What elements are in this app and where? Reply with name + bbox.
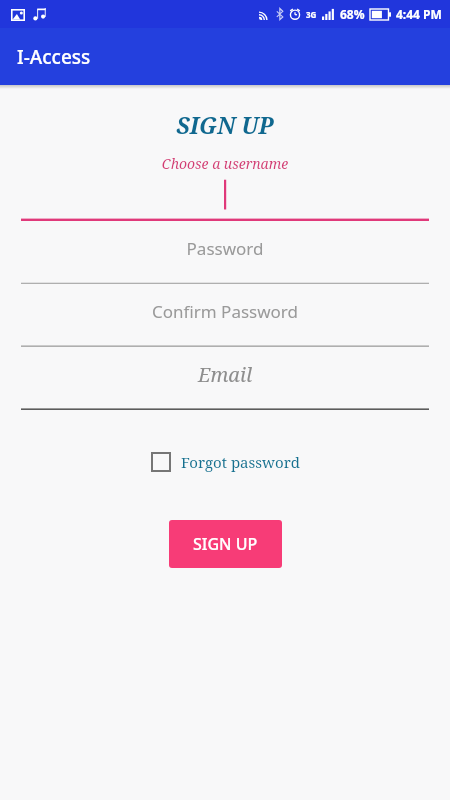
staticText: Forgot password bbox=[181, 452, 300, 472]
button[interactable]: Forgot password bbox=[151, 452, 300, 472]
staticText: Password bbox=[21, 237, 429, 260]
button[interactable]: Password bbox=[21, 221, 429, 284]
staticText: I-Access bbox=[17, 44, 91, 70]
staticText: SIGN UP bbox=[193, 533, 258, 555]
staticText: Confirm Password bbox=[21, 300, 429, 323]
staticText: 4:44 PM bbox=[396, 6, 442, 22]
staticText: Choose a username bbox=[0, 154, 450, 173]
button[interactable]: Confirm Password bbox=[21, 284, 429, 347]
button[interactable]: Email bbox=[21, 347, 429, 410]
staticText: Email bbox=[21, 361, 429, 388]
button[interactable] bbox=[21, 173, 429, 221]
staticText: SIGN UP bbox=[0, 109, 450, 140]
staticText: 68% bbox=[340, 6, 365, 22]
button[interactable]: SIGN UP bbox=[169, 520, 282, 568]
staticText: 3G bbox=[306, 9, 317, 20]
